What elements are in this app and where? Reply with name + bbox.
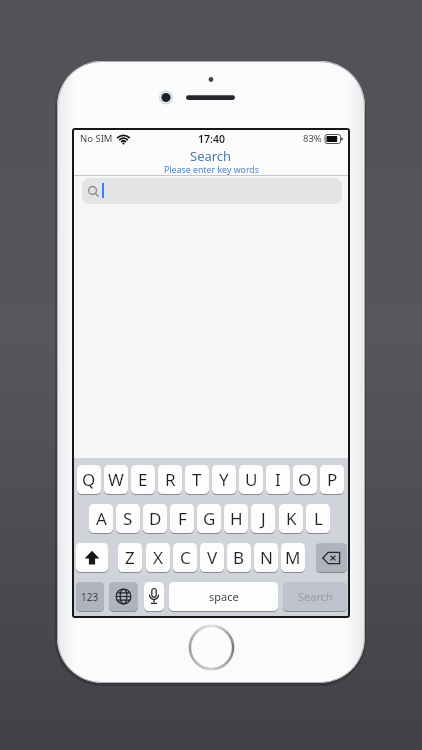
button[interactable]: N (254, 543, 278, 572)
button[interactable]: Y (212, 465, 236, 494)
button[interactable]: A (89, 504, 113, 533)
staticText: Search (190, 147, 232, 164)
button[interactable] (76, 543, 108, 572)
staticText: Search (298, 589, 333, 604)
staticText: Z (125, 546, 135, 569)
button[interactable]: B (227, 543, 251, 572)
staticText: T (192, 468, 202, 491)
button[interactable]: I (266, 465, 290, 494)
button[interactable]: M (281, 543, 305, 572)
staticText: I (275, 468, 281, 491)
staticText: 17:40 (198, 132, 225, 146)
staticText: No SIM (80, 132, 113, 145)
staticText: D (149, 507, 162, 530)
button[interactable]: X (146, 543, 170, 572)
button[interactable]: T (185, 465, 209, 494)
staticText: Please enter key words (164, 164, 259, 176)
button[interactable]: U (239, 465, 263, 494)
staticText: K (286, 507, 297, 530)
staticText: U (245, 468, 258, 491)
staticText: H (230, 507, 243, 530)
button[interactable]: F (170, 504, 194, 533)
staticText: L (314, 507, 323, 530)
button[interactable]: P (320, 465, 344, 494)
button[interactable] (144, 582, 164, 611)
button[interactable]: Q (77, 465, 101, 494)
button[interactable]: C (173, 543, 197, 572)
button[interactable]: H (224, 504, 248, 533)
button[interactable]: J (251, 504, 275, 533)
button[interactable] (82, 178, 342, 204)
staticText: M (285, 546, 301, 569)
staticText: P (327, 468, 338, 491)
staticText: 83% (303, 132, 322, 145)
staticText: X (153, 546, 163, 569)
button[interactable]: Search (283, 582, 347, 611)
staticText: F (178, 507, 187, 530)
button[interactable]: space (169, 582, 278, 611)
staticText: E (138, 468, 148, 491)
button[interactable] (316, 543, 347, 572)
staticText: R (165, 468, 176, 491)
button[interactable]: Z (118, 543, 142, 572)
button[interactable]: D (143, 504, 167, 533)
button[interactable] (109, 582, 138, 611)
staticText: Y (219, 468, 229, 491)
staticText: V (207, 546, 218, 569)
staticText: J (261, 507, 266, 530)
staticText: B (233, 546, 245, 569)
button[interactable]: E (131, 465, 155, 494)
button[interactable]: K (279, 504, 303, 533)
staticText: C (180, 546, 191, 569)
button[interactable]: O (293, 465, 317, 494)
button[interactable]: W (104, 465, 128, 494)
button[interactable]: V (200, 543, 224, 572)
button[interactable]: R (158, 465, 182, 494)
staticText: Q (82, 468, 96, 491)
staticText: A (96, 507, 107, 530)
staticText: O (298, 468, 312, 491)
button[interactable]: S (116, 504, 140, 533)
button[interactable]: L (306, 504, 330, 533)
staticText: 123 (81, 590, 99, 604)
button[interactable]: G (197, 504, 221, 533)
staticText: S (123, 507, 133, 530)
staticText: W (108, 468, 124, 491)
staticText: N (260, 546, 273, 569)
button[interactable]: 123 (76, 582, 104, 611)
staticText: G (203, 507, 216, 530)
staticText: space (209, 589, 239, 604)
